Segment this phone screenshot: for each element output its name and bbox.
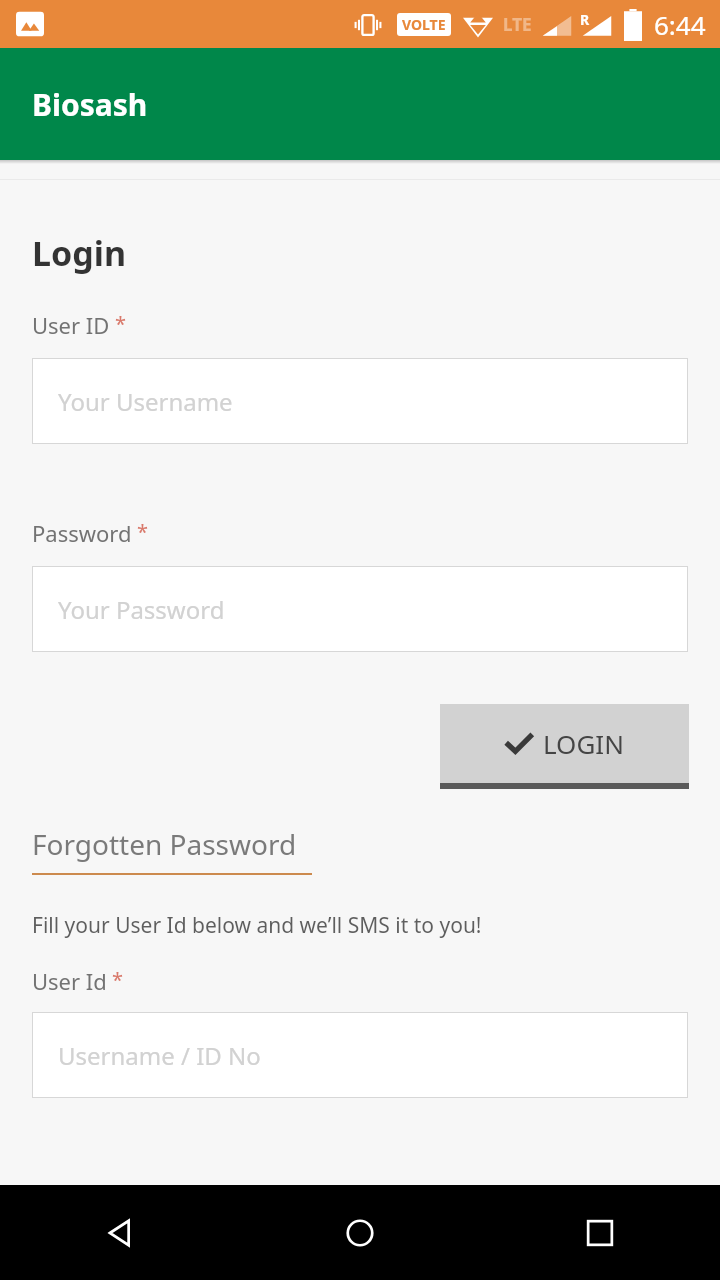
staticText: LTE [503,13,532,36]
staticText: Password [32,518,132,548]
staticText: Your Password [58,593,225,626]
staticText: R [580,10,590,29]
staticText: Forgotten Password [32,825,297,863]
button[interactable]: Recent apps [480,1185,720,1280]
staticText: Fill your User Id below and we’ll SMS it… [32,911,482,940]
button[interactable]: Back [0,1185,240,1280]
button[interactable]: Home [240,1185,480,1280]
staticText: VOLTE [402,15,446,34]
staticText: * [112,966,124,993]
button[interactable]: Your Username [32,358,688,444]
button[interactable]: Your Password [32,566,688,652]
button[interactable]: LOGIN [440,704,689,789]
staticText: Login [32,230,127,276]
staticText: Biosash [32,84,148,125]
staticText: Your Username [58,385,233,418]
staticText: User Id [32,966,107,996]
staticText: 6:44 [654,7,706,42]
staticText: * [115,310,127,337]
button[interactable]: Biosash [0,48,720,160]
button[interactable]: Username / ID No [32,1012,688,1098]
staticText: User ID [32,310,110,340]
staticText: * [137,518,149,545]
staticText: LOGIN [543,726,624,761]
staticText: Username / ID No [58,1039,261,1072]
